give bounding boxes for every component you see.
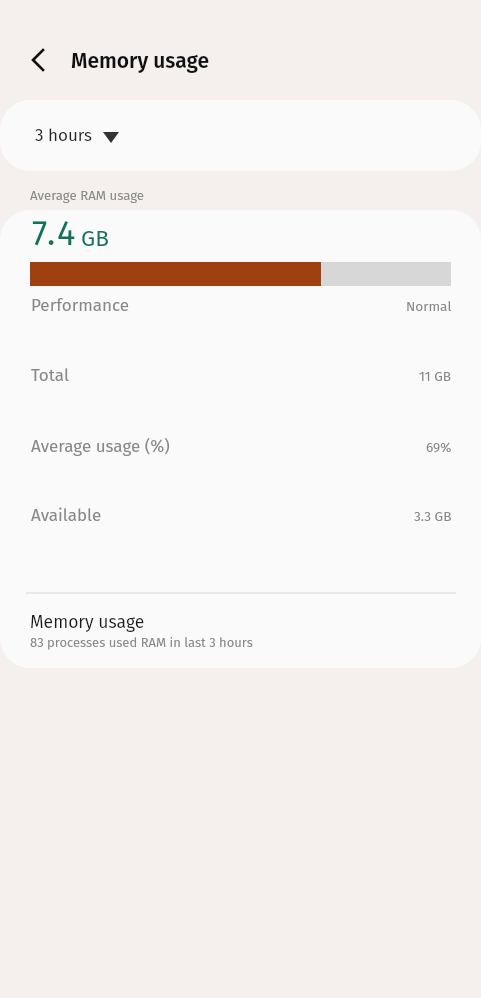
- staticText: Average usage (%): [31, 436, 170, 456]
- staticText: 3 hours: [35, 125, 93, 145]
- button[interactable]: 3 hours: [0, 100, 481, 171]
- button[interactable]: Total: [0, 357, 481, 393]
- button[interactable]: Navigate up: [22, 43, 56, 77]
- staticText: 69%: [426, 439, 452, 455]
- staticText: 83 processes used RAM in last 3 hours: [30, 635, 253, 651]
- button[interactable]: Available: [0, 497, 481, 533]
- staticText: Memory usage: [71, 48, 210, 73]
- staticText: Available: [31, 505, 102, 525]
- button[interactable]: Memory usage: [0, 608, 481, 668]
- staticText: GB: [81, 225, 109, 252]
- button[interactable]: Performance: [0, 287, 481, 323]
- staticText: Memory usage: [30, 612, 145, 633]
- staticText: 7.4: [32, 213, 79, 254]
- button[interactable]: Average usage (%): [0, 428, 481, 464]
- staticText: 3.3 GB: [414, 508, 452, 524]
- staticText: Performance: [31, 295, 130, 315]
- staticText: Total: [31, 365, 69, 385]
- staticText: Average RAM usage: [30, 188, 145, 204]
- staticText: 11 GB: [419, 368, 452, 384]
- staticText: Normal: [406, 298, 452, 314]
